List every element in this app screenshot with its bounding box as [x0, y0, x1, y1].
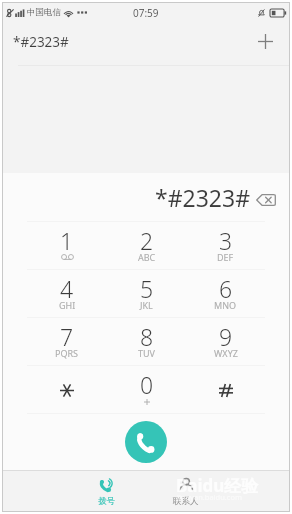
button[interactable]: 1	[27, 222, 107, 269]
staticText: 3	[219, 225, 233, 256]
button[interactable]: Backspace	[254, 188, 278, 212]
staticText: 联系人	[173, 496, 199, 507]
button[interactable]	[27, 366, 107, 413]
staticText: WXYZ	[214, 347, 238, 359]
staticText: 拨号	[98, 496, 115, 507]
staticText: 4	[60, 273, 74, 304]
staticText: 7	[60, 321, 74, 352]
staticText: DEF	[217, 251, 234, 263]
staticText: jingyan.baidu.com	[177, 492, 242, 502]
staticText: TUV	[138, 347, 155, 359]
button[interactable]: Add contact	[251, 27, 279, 55]
button[interactable]: 8	[107, 318, 186, 365]
button[interactable]: 拨号	[66, 471, 146, 511]
button[interactable]: 3	[186, 222, 265, 269]
staticText: *#2323#	[13, 33, 69, 51]
staticText: JKL	[140, 299, 153, 311]
staticText: 6	[219, 273, 233, 304]
staticText: 07:59	[133, 6, 159, 20]
button[interactable]	[186, 366, 265, 413]
button[interactable]: 7	[27, 318, 107, 365]
staticText: Baidu经验	[176, 474, 259, 497]
staticText: GHI	[59, 299, 76, 311]
staticText: 8	[140, 321, 154, 352]
staticText: 2	[140, 225, 154, 256]
staticText: *#2323#	[155, 182, 251, 213]
button[interactable]: 0	[107, 366, 186, 413]
button[interactable]: 9	[186, 318, 265, 365]
staticText: MNO	[214, 299, 237, 311]
staticText: 0	[140, 369, 154, 400]
button[interactable]: 5	[107, 270, 186, 317]
button[interactable]: 联系人	[146, 471, 226, 511]
button[interactable]: 6	[186, 270, 265, 317]
staticText: 5	[140, 273, 154, 304]
staticText: 1	[60, 225, 74, 256]
staticText: 9	[219, 321, 233, 352]
staticText: ABC	[138, 251, 156, 263]
staticText: 中国电信	[27, 7, 61, 18]
button[interactable]: 2	[107, 222, 186, 269]
staticText: PQRS	[55, 347, 79, 359]
button[interactable]: 4	[27, 270, 107, 317]
button[interactable]: Call	[125, 421, 167, 463]
